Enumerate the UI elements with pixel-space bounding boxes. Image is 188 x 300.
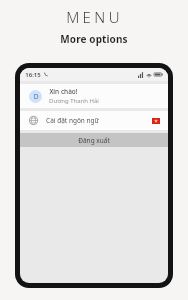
staticText: MENU — [66, 7, 123, 27]
staticText: D — [33, 92, 39, 102]
staticText: Dương Thanh Hải — [49, 97, 99, 105]
staticText: More options — [60, 32, 128, 46]
staticText: Cài đặt ngôn ngữ — [46, 116, 99, 125]
staticText: Xin chào! — [49, 87, 78, 96]
staticText: Đăng xuất — [78, 136, 110, 145]
button[interactable]: Đăng xuất — [20, 133, 168, 147]
button[interactable]: Language — [20, 111, 168, 130]
button[interactable]: D — [20, 84, 168, 108]
staticText: 16:15 — [25, 71, 41, 79]
other: Language — [29, 116, 38, 125]
